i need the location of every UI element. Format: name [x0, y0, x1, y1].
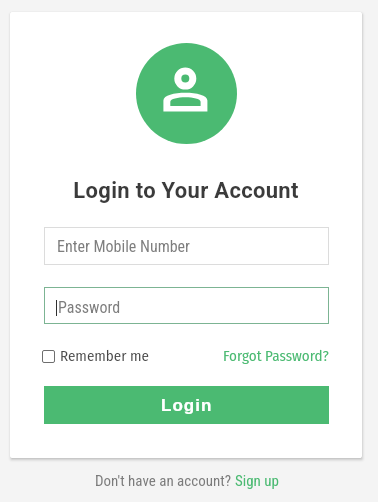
button[interactable]: Password [44, 287, 329, 324]
button[interactable]: Forgot Password? [223, 347, 329, 365]
button[interactable]: Enter Mobile Number [44, 227, 329, 265]
staticText: Password [58, 298, 121, 317]
other: Account avatar [136, 43, 237, 144]
staticText: Login to Your Account [10, 178, 362, 204]
button[interactable]: Sign up [235, 472, 279, 490]
staticText: Login [161, 396, 213, 415]
staticText: Don't have an account? [95, 472, 235, 490]
staticText: Enter Mobile Number [57, 237, 190, 256]
button[interactable]: Remember me [42, 347, 149, 365]
staticText: Remember me [60, 347, 149, 365]
button[interactable]: Login [44, 386, 329, 424]
